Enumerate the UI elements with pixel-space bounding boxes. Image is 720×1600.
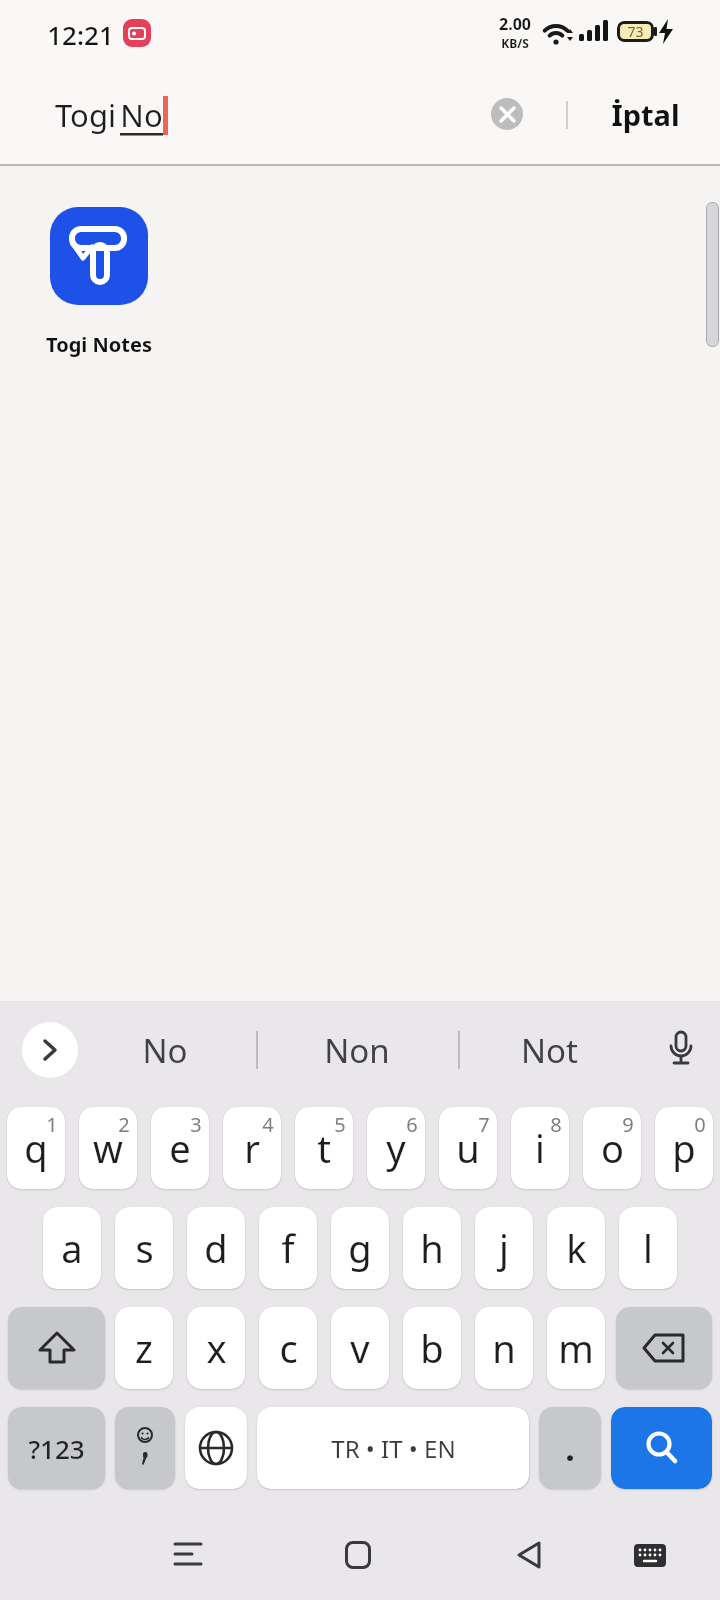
staticText: k: [566, 1222, 587, 1274]
button[interactable]: [666, 1031, 696, 1071]
button[interactable]: y: [367, 1107, 425, 1189]
button[interactable]: [22, 1022, 78, 1078]
staticText: İptal: [611, 95, 680, 134]
button[interactable]: r: [223, 1107, 281, 1189]
button[interactable]: l: [619, 1207, 677, 1289]
button[interactable]: f: [259, 1207, 317, 1289]
staticText: 5: [334, 1111, 346, 1138]
staticText: No: [142, 1028, 188, 1073]
staticText: o: [601, 1122, 624, 1174]
button[interactable]: i: [511, 1107, 569, 1189]
staticText: i: [535, 1122, 545, 1174]
staticText: 4: [262, 1111, 274, 1138]
staticText: 0: [694, 1111, 706, 1138]
staticText: h: [420, 1222, 444, 1274]
staticText: x: [206, 1322, 227, 1374]
staticText: Not: [521, 1028, 578, 1073]
staticText: m: [558, 1322, 594, 1374]
staticText: t: [317, 1122, 331, 1174]
button[interactable]: z: [115, 1307, 173, 1389]
staticText: y: [386, 1122, 406, 1174]
button[interactable]: [516, 1541, 542, 1569]
button[interactable]: g: [331, 1207, 389, 1289]
staticText: u: [456, 1122, 480, 1174]
button[interactable]: [491, 98, 523, 130]
staticText: z: [135, 1322, 153, 1374]
staticText: KB/S: [501, 35, 529, 51]
staticText: 2.00: [499, 13, 531, 35]
staticText: b: [420, 1322, 444, 1374]
staticText: f: [281, 1222, 295, 1274]
staticText: 9: [622, 1111, 634, 1138]
staticText: v: [350, 1322, 370, 1374]
button[interactable]: n: [475, 1307, 533, 1389]
button[interactable]: [8, 1307, 105, 1389]
staticText: w: [93, 1122, 123, 1174]
staticText: 6: [406, 1111, 418, 1138]
staticText: p: [672, 1122, 696, 1174]
button[interactable]: b: [403, 1307, 461, 1389]
button[interactable]: v: [331, 1307, 389, 1389]
button[interactable]: Non: [292, 1026, 422, 1074]
button[interactable]: h: [403, 1207, 461, 1289]
staticText: j: [499, 1222, 509, 1274]
button[interactable]: q: [7, 1107, 65, 1189]
staticText: n: [492, 1322, 516, 1374]
staticText: l: [643, 1222, 653, 1274]
staticText: 7: [478, 1111, 490, 1138]
staticText: c: [279, 1322, 298, 1374]
staticText: g: [348, 1222, 372, 1274]
button[interactable]: Not: [484, 1026, 614, 1074]
button[interactable]: İptal: [600, 93, 690, 135]
staticText: 2: [118, 1111, 130, 1138]
button[interactable]: [611, 1407, 712, 1489]
button[interactable]: ?123: [8, 1407, 105, 1489]
button[interactable]: [345, 1541, 371, 1569]
button[interactable]: e: [151, 1107, 209, 1189]
button[interactable]: Togi Notes: [20, 207, 177, 358]
staticText: s: [135, 1222, 154, 1274]
button[interactable]: a: [43, 1207, 101, 1289]
staticText: 3: [190, 1111, 202, 1138]
staticText: No: [120, 94, 163, 136]
staticText: 1: [46, 1111, 58, 1138]
staticText: ?123: [28, 1431, 85, 1466]
button[interactable]: No: [100, 1026, 230, 1074]
button[interactable]: t: [295, 1107, 353, 1189]
button[interactable]: s: [115, 1207, 173, 1289]
button[interactable]: u: [439, 1107, 497, 1189]
staticText: q: [24, 1122, 48, 1174]
staticText: e: [169, 1122, 191, 1174]
button[interactable]: [185, 1407, 247, 1489]
button[interactable]: k: [547, 1207, 605, 1289]
button[interactable]: m: [547, 1307, 605, 1389]
staticText: Togi: [51, 94, 120, 136]
button[interactable]: w: [79, 1107, 137, 1189]
button[interactable]: [616, 1307, 712, 1389]
staticText: Togi Notes: [46, 331, 152, 358]
button[interactable]: [634, 1544, 666, 1568]
button[interactable]: c: [259, 1307, 317, 1389]
staticText: r: [244, 1122, 260, 1174]
button[interactable]: .: [539, 1407, 601, 1489]
staticText: a: [61, 1222, 83, 1274]
staticText: Non: [324, 1028, 390, 1073]
staticText: TR • IT • EN: [331, 1432, 456, 1465]
button[interactable]: j: [475, 1207, 533, 1289]
staticText: 8: [550, 1111, 562, 1138]
button[interactable]: [115, 1407, 175, 1489]
staticText: d: [204, 1222, 228, 1274]
button[interactable]: x: [187, 1307, 245, 1389]
button[interactable]: o: [583, 1107, 641, 1189]
staticText: .: [565, 1425, 575, 1471]
button[interactable]: [174, 1541, 204, 1569]
staticText: 12:21: [47, 17, 114, 52]
staticText: 73: [627, 22, 644, 41]
button[interactable]: TR • IT • EN: [257, 1407, 529, 1489]
button[interactable]: p: [655, 1107, 713, 1189]
button[interactable]: d: [187, 1207, 245, 1289]
